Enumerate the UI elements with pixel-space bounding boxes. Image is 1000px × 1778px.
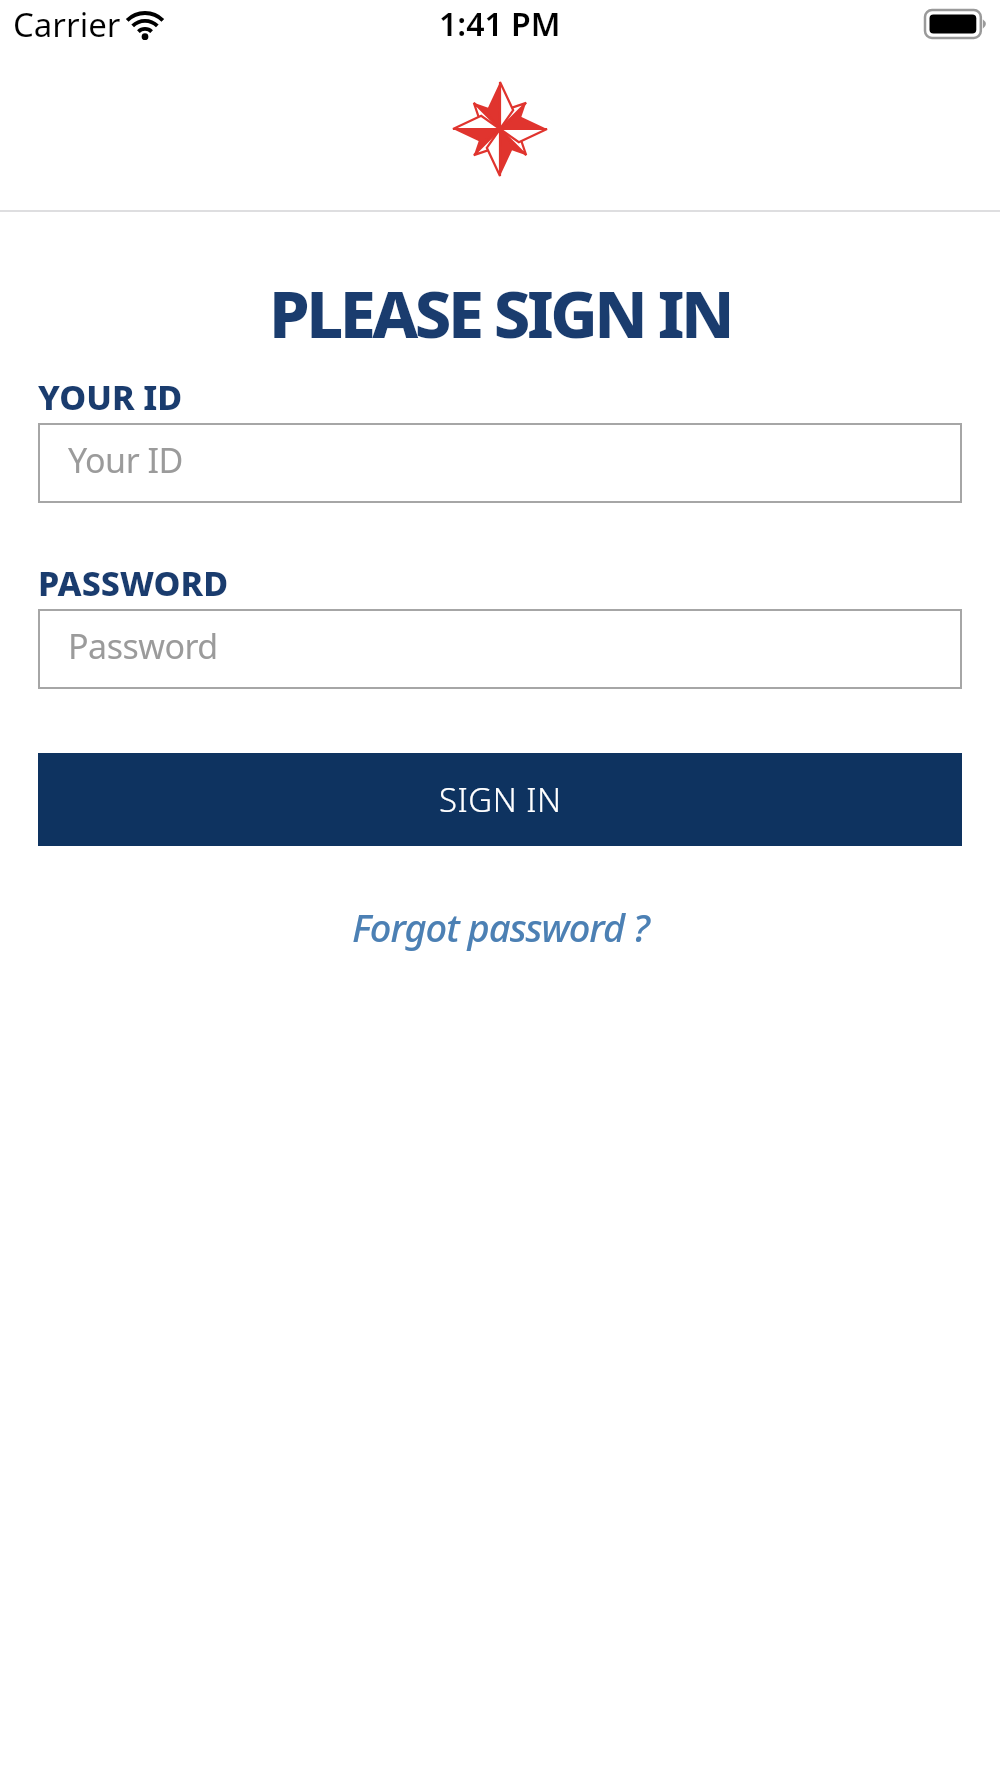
staticText: Carrier xyxy=(13,2,121,47)
button[interactable]: Forgot password ? xyxy=(352,901,649,953)
button[interactable]: Password xyxy=(38,609,962,689)
button[interactable]: Your ID xyxy=(38,423,962,503)
staticText: Your ID xyxy=(68,437,183,483)
staticText: PLEASE SIGN IN xyxy=(0,269,1000,358)
button[interactable]: SIGN IN xyxy=(38,753,962,846)
staticText: Password xyxy=(68,623,218,669)
staticText: PASSWORD xyxy=(38,560,229,606)
staticText: YOUR ID xyxy=(38,374,183,420)
staticText: SIGN IN xyxy=(439,777,562,822)
staticText: 1:41 PM xyxy=(439,2,561,46)
